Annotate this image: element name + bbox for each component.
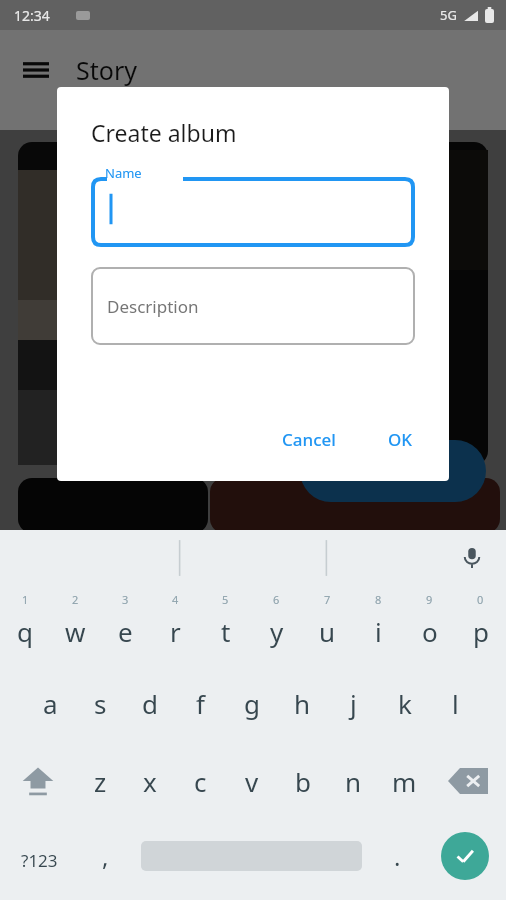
staticText: 1: [22, 592, 29, 607]
button[interactable]: d: [125, 664, 175, 742]
staticText: 6: [273, 592, 280, 607]
button[interactable]: Enter: [423, 820, 506, 900]
staticText: s: [94, 686, 107, 721]
staticText: o: [422, 614, 438, 649]
staticText: z: [94, 764, 107, 799]
staticText: 4: [172, 592, 179, 607]
button[interactable]: 3: [100, 586, 150, 664]
button[interactable]: Voice input: [452, 538, 492, 578]
staticText: h: [294, 686, 311, 721]
staticText: Create album: [91, 117, 237, 148]
button[interactable]: h: [277, 664, 328, 742]
staticText: ,: [102, 840, 109, 873]
staticText: b: [295, 764, 311, 799]
button[interactable]: 1: [0, 586, 50, 664]
staticText: Story: [76, 53, 137, 87]
button[interactable]: n: [328, 742, 379, 820]
button[interactable]: 5: [200, 586, 251, 664]
button[interactable]: m: [379, 742, 430, 820]
staticText: 3: [122, 592, 129, 607]
staticText: q: [17, 614, 33, 649]
button[interactable]: z: [75, 742, 125, 820]
button[interactable]: b: [277, 742, 328, 820]
staticText: Name: [105, 164, 142, 182]
button[interactable]: v: [226, 742, 277, 820]
staticText: r: [170, 614, 181, 649]
button[interactable]: Name: [91, 171, 415, 247]
staticText: 0: [477, 592, 484, 607]
staticText: w: [65, 614, 86, 649]
staticText: n: [345, 764, 362, 799]
staticText: j: [350, 686, 357, 721]
button[interactable]: c: [175, 742, 226, 820]
staticText: g: [244, 686, 260, 721]
button[interactable]: j: [328, 664, 379, 742]
staticText: m: [392, 764, 417, 799]
button[interactable]: Space: [131, 820, 371, 900]
staticText: e: [118, 614, 133, 649]
button[interactable]: x: [125, 742, 175, 820]
button[interactable]: 6: [251, 586, 302, 664]
button[interactable]: 4: [150, 586, 200, 664]
staticText: l: [452, 686, 459, 721]
button[interactable]: s: [75, 664, 125, 742]
button[interactable]: Description: [91, 267, 415, 345]
staticText: 2: [72, 592, 79, 607]
button[interactable]: g: [226, 664, 277, 742]
button[interactable]: 7: [302, 586, 353, 664]
button[interactable]: f: [175, 664, 226, 742]
staticText: u: [319, 614, 336, 649]
staticText: 9: [426, 592, 433, 607]
staticText: 12:34: [14, 6, 50, 25]
button[interactable]: ,: [79, 820, 131, 900]
staticText: 5G: [440, 6, 457, 24]
button[interactable]: Open navigation drawer: [14, 48, 58, 92]
staticText: p: [473, 614, 489, 649]
staticText: OK: [388, 428, 413, 451]
button[interactable]: 2: [50, 586, 100, 664]
staticText: y: [270, 614, 284, 649]
staticText: 7: [324, 592, 331, 607]
button[interactable]: l: [430, 664, 481, 742]
button[interactable]: a: [25, 664, 75, 742]
staticText: f: [196, 686, 205, 721]
button[interactable]: k: [379, 664, 430, 742]
button[interactable]: 0: [455, 586, 506, 664]
button[interactable]: 8: [353, 586, 404, 664]
button[interactable]: Backspace: [430, 742, 506, 820]
staticText: c: [194, 764, 207, 799]
button[interactable]: OK: [374, 420, 427, 459]
staticText: Cancel: [282, 428, 336, 451]
button[interactable]: Cancel: [268, 420, 350, 459]
button[interactable]: .: [371, 820, 423, 900]
staticText: a: [43, 686, 58, 721]
staticText: ?123: [21, 849, 58, 872]
button[interactable]: 9: [404, 586, 455, 664]
staticText: i: [375, 614, 382, 649]
staticText: 5: [222, 592, 229, 607]
staticText: .: [394, 840, 401, 873]
staticText: 8: [375, 592, 382, 607]
staticText: x: [143, 764, 157, 799]
staticText: t: [221, 614, 231, 649]
button[interactable]: Shift: [0, 742, 75, 820]
staticText: d: [142, 686, 158, 721]
staticText: k: [398, 686, 412, 721]
staticText: Description: [107, 295, 199, 318]
staticText: v: [245, 764, 259, 799]
button[interactable]: ?123: [0, 820, 79, 900]
